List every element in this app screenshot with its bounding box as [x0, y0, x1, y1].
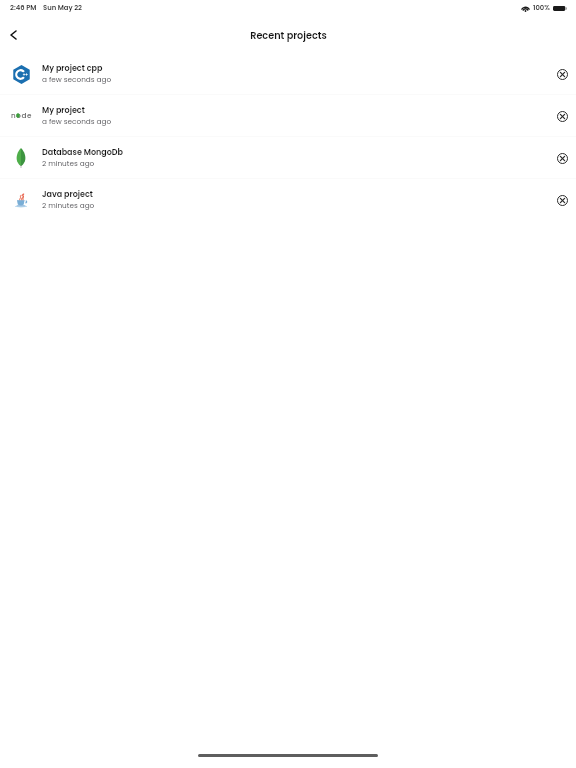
- button[interactable]: Remove project: [548, 179, 576, 221]
- button[interactable]: My project cpp: [0, 53, 576, 95]
- staticText: Java project: [42, 189, 93, 200]
- button[interactable]: Java project: [0, 179, 576, 221]
- button[interactable]: node: [0, 95, 576, 137]
- button[interactable]: Remove project: [548, 95, 576, 137]
- staticText: My project cpp: [42, 63, 103, 74]
- staticText: Recent projects: [250, 29, 327, 43]
- staticText: a few seconds ago: [42, 74, 112, 84]
- staticText: Database MongoDb: [42, 147, 124, 158]
- staticText: node: [11, 110, 33, 120]
- button[interactable]: Remove project: [548, 137, 576, 179]
- staticText: 2 minutes ago: [42, 200, 95, 210]
- staticText: 2:46 PM: [10, 3, 37, 13]
- staticText: Sun May 22: [43, 3, 82, 13]
- button[interactable]: Remove project: [548, 53, 576, 95]
- button[interactable]: Database MongoDb: [0, 137, 576, 179]
- staticText: 100%: [533, 3, 550, 13]
- staticText: a few seconds ago: [42, 116, 112, 126]
- button[interactable]: Back: [3, 22, 27, 46]
- staticText: My project: [42, 105, 85, 116]
- staticText: 2 minutes ago: [42, 158, 95, 168]
